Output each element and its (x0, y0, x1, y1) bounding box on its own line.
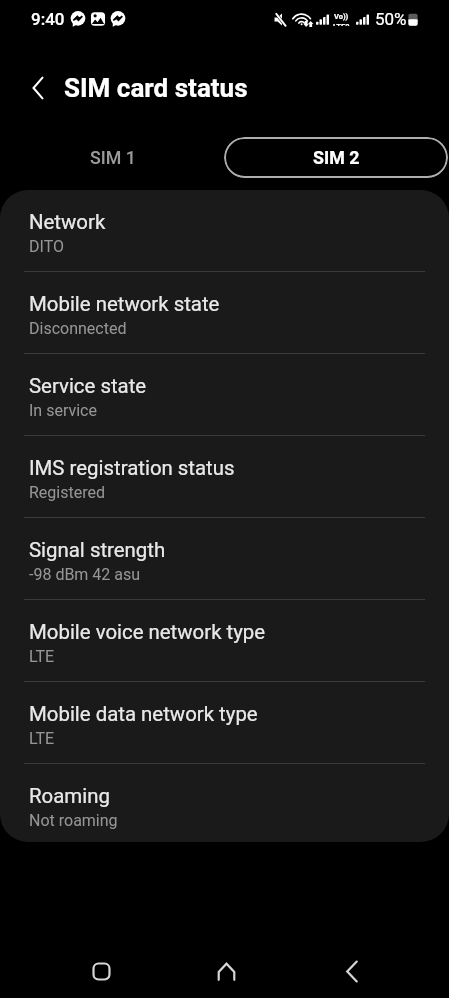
staticText: Disconnected (29, 319, 127, 338)
staticText: 9:40 (31, 9, 65, 29)
staticText: SIM 2 (313, 147, 360, 168)
staticText: LTE (29, 647, 55, 666)
staticText: In service (29, 401, 97, 420)
staticText: Mobile network state (29, 292, 220, 316)
button[interactable]: Back (21, 71, 55, 105)
button[interactable]: Service state (0, 354, 449, 436)
staticText: Signal strength (29, 538, 166, 562)
button[interactable]: Roaming (0, 764, 449, 842)
staticText: LTE2 (333, 22, 350, 26)
button[interactable]: Network (0, 190, 449, 272)
staticText: IMS registration status (29, 456, 235, 480)
staticText: -98 dBm 42 asu (29, 565, 141, 584)
button[interactable]: Mobile data network type (0, 682, 449, 764)
button[interactable]: Back (322, 943, 382, 998)
staticText: SIM card status (64, 73, 248, 103)
staticText: Mobile voice network type (29, 620, 266, 644)
staticText: Mobile data network type (29, 702, 258, 726)
staticText: 50% (375, 9, 407, 29)
button[interactable]: Home (196, 943, 256, 998)
staticText: Vo)) (334, 12, 349, 21)
staticText: Network (29, 210, 106, 234)
staticText: Registered (29, 483, 105, 502)
staticText: DITO (29, 237, 64, 256)
button[interactable]: IMS registration status (0, 436, 449, 518)
button[interactable]: SIM 2 (224, 137, 448, 178)
button[interactable]: SIM 1 (2, 137, 223, 178)
button[interactable]: Signal strength (0, 518, 449, 600)
staticText: Service state (29, 374, 147, 398)
button[interactable]: Recents (71, 943, 131, 998)
staticText: Not roaming (29, 811, 118, 830)
button[interactable]: Mobile network state (0, 272, 449, 354)
staticText: Roaming (29, 784, 110, 808)
staticText: LTE (29, 729, 55, 748)
button[interactable]: Mobile voice network type (0, 600, 449, 682)
staticText: SIM 1 (90, 147, 136, 168)
